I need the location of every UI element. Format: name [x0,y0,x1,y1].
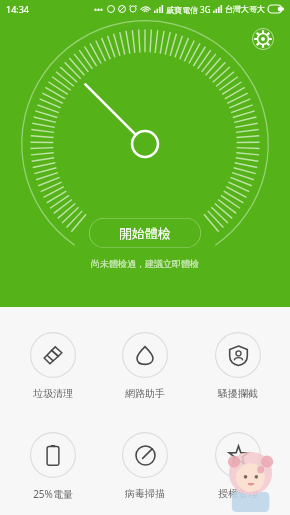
button[interactable]: Settings [246,22,280,56]
staticText: 病毒掃描 [125,487,165,500]
button[interactable]: 網路助手 [105,330,185,402]
staticText: 威寶電信 3G [166,4,211,15]
button[interactable]: 病毒掃描 [105,430,185,502]
staticText: ••• [94,4,104,15]
staticText: 騷擾攔截 [218,387,258,400]
staticText: 尚未體檢過，建議立即體檢 [91,258,199,269]
staticText: 網路助手 [125,387,165,400]
button[interactable]: 開始體檢 [89,218,201,248]
button[interactable]: 授權管理 [198,430,278,502]
button[interactable]: 騷擾攔截 [198,330,278,402]
staticText: 台灣大哥大 [225,4,265,14]
button[interactable]: 25%電量 [13,430,93,503]
staticText: 授權管理 [218,487,258,500]
staticText: 25%電量 [33,487,73,501]
staticText: 開始體檢 [119,225,171,241]
staticText: 垃圾清理 [33,387,73,400]
staticText: 14:34 [6,3,30,15]
button[interactable]: 垃圾清理 [13,330,93,402]
